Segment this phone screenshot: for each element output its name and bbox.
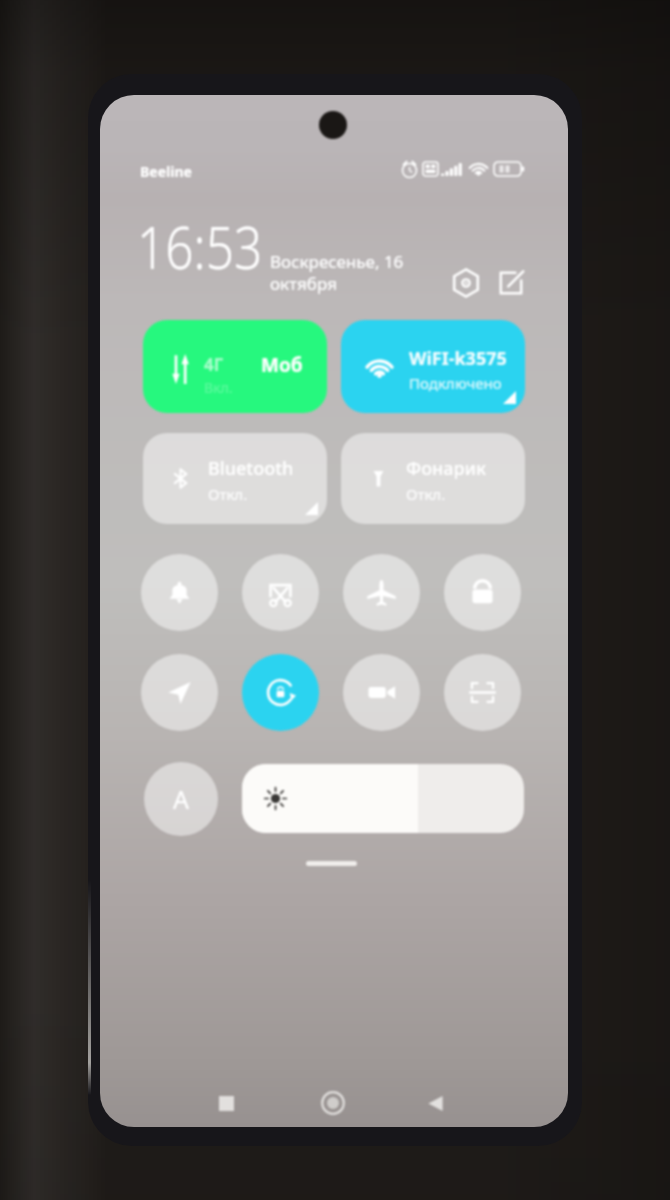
button[interactable]: Silent mode <box>141 554 218 631</box>
button[interactable]: WiFI-k3575 <box>341 320 525 413</box>
button[interactable]: Scan code <box>444 654 521 731</box>
button[interactable]: Bluetooth <box>143 433 327 524</box>
button[interactable]: Airplane mode <box>343 554 420 631</box>
staticText: Фонарик <box>406 456 487 481</box>
staticText: Откл. <box>406 484 446 504</box>
staticText: Откл. <box>208 484 248 504</box>
button[interactable]: Edit <box>494 266 528 300</box>
staticText: 16:53 <box>137 206 263 286</box>
button[interactable]: Фонарик <box>341 433 525 524</box>
button[interactable]: Back <box>422 1090 448 1116</box>
staticText: Воскресенье, 16 октября <box>270 250 404 295</box>
button[interactable] <box>242 764 524 833</box>
staticText: 4Г <box>204 353 224 376</box>
button[interactable]: Screen recorder <box>343 654 420 731</box>
button[interactable]: Location <box>141 654 218 731</box>
button[interactable]: Lock screen <box>444 554 521 631</box>
staticText: Моб <box>261 352 303 378</box>
staticText: Подключено <box>409 373 502 393</box>
button[interactable]: Auto rotate <box>242 654 319 731</box>
staticText: WiFI-k3575 <box>409 346 507 371</box>
button[interactable]: Recents <box>213 1090 239 1116</box>
staticText: A <box>173 782 189 816</box>
button[interactable]: A <box>144 762 218 836</box>
button[interactable]: 4Г <box>143 320 327 413</box>
button[interactable]: Screenshot <box>242 554 319 631</box>
staticText: Вкл. <box>204 378 233 397</box>
button[interactable]: Home <box>320 1090 346 1116</box>
button[interactable]: Settings <box>449 266 483 300</box>
staticText: Beeline <box>140 162 192 181</box>
staticText: Bluetooth <box>208 456 294 481</box>
